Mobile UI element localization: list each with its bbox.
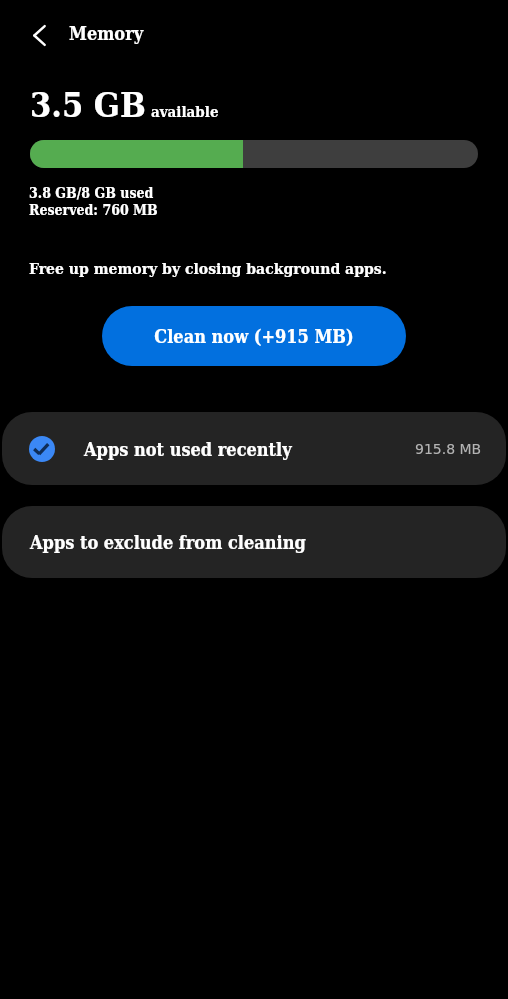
staticText: Memory [69,23,144,44]
staticText: available [151,103,219,121]
staticText: Reserved: 760 MB [29,202,158,218]
button[interactable]: Clean now (+915 MB) [102,306,406,366]
staticText: 3.5 GB [30,85,146,125]
staticText: Free up memory by closing background app… [29,259,387,277]
staticText: 915.8 MB [415,441,482,457]
button[interactable]: Back [19,15,59,55]
staticText: Apps to exclude from cleaning [30,532,306,553]
button[interactable]: Apps to exclude from cleaning [2,506,506,578]
staticText: Apps not used recently [84,439,292,460]
staticText: Clean now (+915 MB) [154,326,354,347]
button[interactable]: Apps not used recently [2,412,506,485]
staticText: 3.8 GB/8 GB used [29,185,154,201]
